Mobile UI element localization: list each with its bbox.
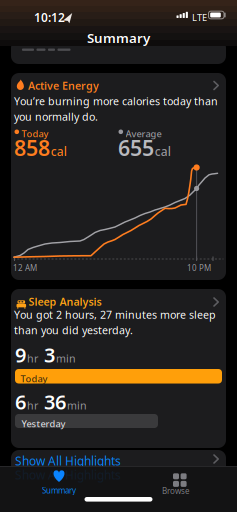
staticText: 9 [15,341,26,368]
button[interactable]: Active Energy [11,73,226,280]
staticText: Show All Highlights [15,467,121,483]
button[interactable]: Sleep Analysis [11,289,226,448]
staticText: Summary [42,485,76,496]
staticText: 6 [15,388,26,415]
staticText: Today [21,127,48,140]
staticText: 36 [39,388,66,415]
staticText: Yesterday [21,417,65,430]
staticText: cal [51,143,67,159]
button[interactable]: Show All Highlights [11,450,226,478]
staticText: You got 2 hours, 27 minutes more sleep t… [14,307,216,337]
staticText: 10:12 [34,9,65,25]
staticText: Sleep Analysis [28,294,101,309]
staticText: Summary [87,29,150,47]
staticText: Average [125,127,161,140]
button[interactable]: Summary [9,469,109,497]
staticText: Browse [162,486,190,496]
staticText: hr [27,398,38,412]
staticText: LTE [192,11,207,24]
button[interactable]: Previous highlight card [11,40,226,64]
staticText: 858 [14,133,50,162]
staticText: 655 [118,133,154,162]
staticText: You’re burning more calories today than … [14,94,218,124]
staticText: min [67,398,87,412]
staticText: 10 PM [187,262,211,273]
staticText: Active Energy [28,78,99,93]
staticText: Show All Highlights [15,453,121,469]
staticText: min [56,351,76,365]
staticText: Today [20,372,47,385]
button[interactable]: Browse [126,469,226,497]
staticText: 3 [39,341,55,368]
staticText: hr [27,351,38,365]
staticText: cal [155,143,171,159]
staticText: 12 AM [13,262,37,273]
